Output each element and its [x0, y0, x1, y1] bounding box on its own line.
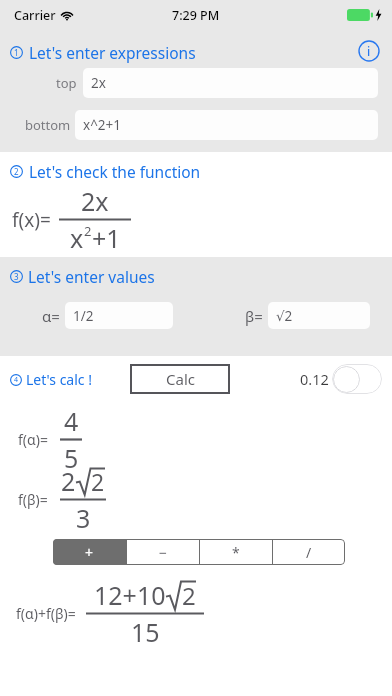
staticText: f(β)=	[18, 490, 48, 509]
staticText: 2x	[91, 74, 106, 92]
button[interactable]: 3	[10, 266, 155, 287]
button[interactable]: x^2+1	[75, 110, 378, 140]
staticText: 1	[14, 47, 19, 58]
staticText: bottom	[25, 116, 71, 134]
staticText: Carrier	[14, 7, 56, 24]
button[interactable]: +	[53, 539, 126, 565]
staticText: f(α)+f(β)=	[16, 604, 76, 623]
button[interactable]: 1/2	[65, 302, 173, 329]
staticText: 3	[14, 271, 19, 282]
staticText: 4	[14, 375, 19, 385]
staticText: 2	[84, 222, 92, 240]
button[interactable]: √2	[268, 302, 370, 329]
staticText: 15	[131, 615, 160, 649]
staticText: +1	[92, 221, 121, 255]
staticText: x^2+1	[83, 116, 122, 134]
staticText: 5	[64, 441, 79, 475]
staticText: 0.12	[300, 369, 329, 389]
button[interactable]: 4	[10, 370, 92, 389]
staticText: f(x)=	[12, 207, 51, 233]
staticText: 4	[64, 404, 79, 438]
staticText: 2x	[81, 184, 109, 218]
button[interactable]: Toggle decimal mode	[332, 364, 382, 394]
staticText: 2	[14, 166, 19, 177]
button[interactable]: −	[127, 539, 199, 565]
staticText: Let's enter expressions	[29, 42, 196, 63]
staticText: √2	[276, 307, 293, 325]
staticText: Let's calc !	[26, 370, 92, 389]
staticText: i	[367, 43, 371, 59]
staticText: −	[159, 543, 168, 562]
button[interactable]: *	[200, 539, 272, 565]
staticText: 2	[91, 466, 105, 496]
button[interactable]: 2x	[83, 68, 378, 98]
button[interactable]: Calc	[130, 364, 230, 394]
staticText: 2	[61, 464, 76, 498]
staticText: +	[85, 543, 94, 562]
button[interactable]: 1	[10, 42, 196, 63]
staticText: 7:29 PM	[172, 7, 220, 24]
button[interactable]: /	[273, 539, 345, 565]
staticText: Calc	[166, 369, 195, 389]
staticText: α=	[42, 306, 60, 326]
button[interactable]: 2	[10, 161, 201, 182]
button[interactable]: Info	[358, 40, 380, 62]
staticText: f(α)=	[18, 430, 48, 449]
staticText: 3	[76, 501, 91, 535]
staticText: x	[70, 221, 84, 255]
staticText: 12+10	[94, 578, 166, 612]
staticText: *	[232, 543, 240, 562]
staticText: Let's check the function	[29, 161, 201, 182]
staticText: Let's enter values	[28, 266, 155, 287]
staticText: top	[56, 74, 77, 92]
staticText: 2	[182, 579, 196, 611]
staticText: /	[306, 543, 312, 562]
staticText: β=	[245, 306, 263, 326]
staticText: 1/2	[73, 307, 94, 325]
